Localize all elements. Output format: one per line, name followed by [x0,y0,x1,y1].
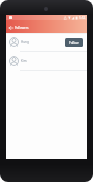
button[interactable]: Followers [6,21,87,34]
button[interactable]: Follow [65,38,83,47]
staticText: 5:52 [79,16,86,20]
button[interactable]: Hung [6,33,87,51]
staticText: Followers [15,26,29,30]
staticText: Hung [21,40,29,44]
staticText: Kim [21,59,27,63]
button[interactable]: Kim [6,52,87,70]
staticText: Follow [69,41,79,45]
